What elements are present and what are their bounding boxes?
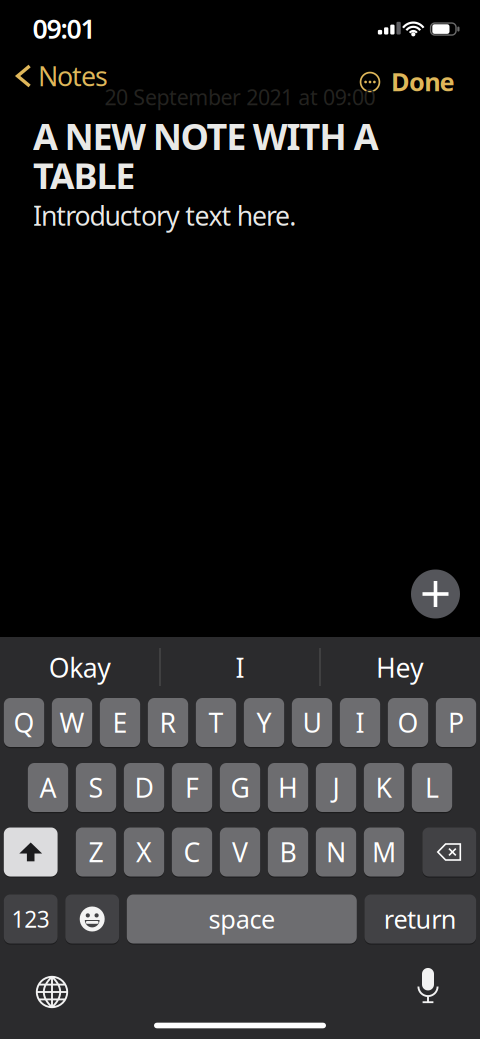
staticText: TABLE [33, 152, 135, 199]
staticText: Introductory text here. [33, 198, 296, 233]
button[interactable]: Hey [325, 643, 475, 691]
button[interactable]: O [388, 698, 428, 747]
staticText: G [230, 770, 249, 805]
button[interactable]: P [436, 698, 476, 747]
staticText: S [88, 770, 103, 805]
staticText: Hey [376, 650, 424, 685]
button[interactable]: Emoji [65, 894, 119, 943]
staticText: R [159, 705, 176, 740]
staticText: M [372, 834, 396, 870]
staticText: J [332, 770, 339, 805]
button[interactable]: Delete [422, 827, 476, 876]
button[interactable]: space [127, 894, 357, 943]
staticText: Done [391, 65, 454, 98]
button[interactable]: Q [4, 698, 44, 747]
staticText: A NEW NOTE WITH A [33, 112, 379, 160]
button[interactable]: G [220, 763, 260, 812]
button[interactable]: X [124, 827, 164, 876]
button[interactable]: 123 [4, 894, 58, 943]
button[interactable]: R [148, 698, 188, 747]
staticText: B [279, 834, 296, 870]
staticText: H [278, 770, 298, 805]
staticText: W [59, 705, 84, 740]
staticText: Okay [49, 650, 111, 685]
button[interactable]: M [364, 827, 404, 876]
button[interactable]: A [28, 763, 68, 812]
staticText: 20 September 2021 at 09:00 [104, 83, 375, 111]
staticText: I [355, 705, 364, 740]
button[interactable]: W [52, 698, 92, 747]
staticText: E [112, 705, 127, 740]
staticText: D [134, 770, 153, 805]
button[interactable]: Next keyboard [35, 975, 69, 1009]
button[interactable]: E [100, 698, 140, 747]
staticText: 09:01 [32, 11, 95, 46]
staticText: Q [13, 705, 34, 740]
button[interactable]: More [355, 67, 385, 97]
button[interactable]: Okay [5, 643, 155, 691]
staticText: space [209, 902, 275, 936]
button[interactable]: B [268, 827, 308, 876]
staticText: return [384, 902, 457, 936]
staticText: O [397, 705, 418, 740]
staticText: A [39, 770, 56, 805]
staticText: F [185, 770, 199, 805]
button[interactable]: D [124, 763, 164, 812]
staticText: Y [256, 705, 271, 740]
button[interactable]: Z [76, 827, 116, 876]
staticText: P [448, 705, 464, 740]
button[interactable]: N [316, 827, 356, 876]
button[interactable]: C [172, 827, 212, 876]
button[interactable]: F [172, 763, 212, 812]
button[interactable]: L [412, 763, 452, 812]
button[interactable]: S [76, 763, 116, 812]
button[interactable]: Add [411, 569, 460, 618]
button[interactable]: V [220, 827, 260, 876]
button[interactable]: U [292, 698, 332, 747]
button[interactable]: Dictate [415, 967, 441, 1009]
button[interactable]: I [340, 698, 380, 747]
button[interactable]: I [165, 643, 315, 691]
button[interactable]: T [196, 698, 236, 747]
staticText: L [425, 770, 439, 805]
button[interactable]: J [316, 763, 356, 812]
staticText: T [208, 705, 223, 740]
staticText: Notes [38, 58, 108, 94]
staticText: C [183, 834, 200, 870]
staticText: V [232, 834, 248, 870]
button[interactable]: K [364, 763, 404, 812]
staticText: I [235, 650, 244, 685]
staticText: U [302, 705, 321, 740]
button[interactable]: Done [374, 65, 454, 98]
staticText: K [375, 770, 392, 805]
staticText: N [326, 834, 346, 870]
staticText: X [136, 834, 152, 870]
button[interactable]: H [268, 763, 308, 812]
button[interactable]: Notes [14, 63, 159, 99]
staticText: 123 [12, 904, 50, 934]
staticText: Z [88, 834, 103, 870]
button[interactable]: return [364, 894, 476, 943]
button[interactable]: Y [244, 698, 284, 747]
button[interactable]: Shift [4, 827, 58, 876]
